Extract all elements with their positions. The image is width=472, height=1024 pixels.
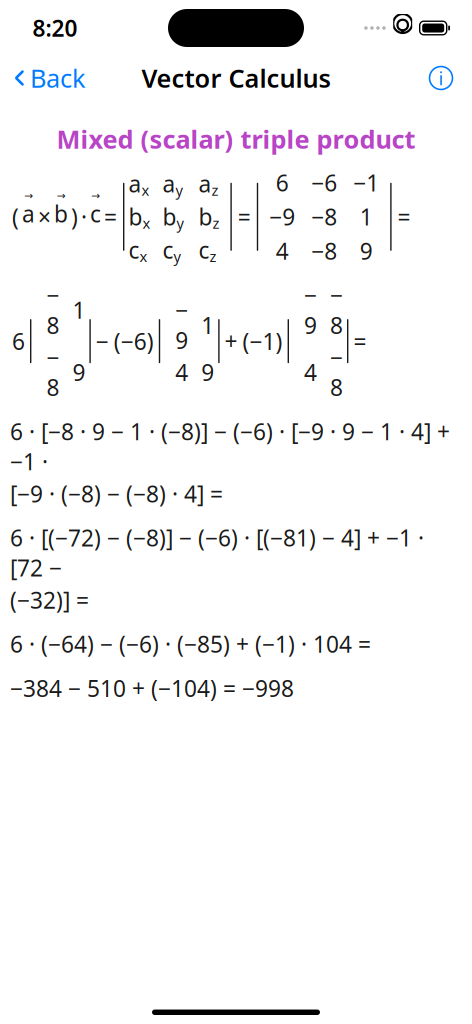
staticText: = xyxy=(398,202,411,232)
staticText: a xyxy=(128,169,141,199)
staticText: −8 xyxy=(330,280,343,340)
staticText: x xyxy=(141,180,149,200)
staticText: z xyxy=(212,213,219,233)
staticText: Vector Calculus xyxy=(141,61,330,95)
staticText: 6 · [−8 · 9 − 1 · (−8)] − (−6) · [−9 · 9… xyxy=(10,416,450,477)
staticText: i xyxy=(438,66,443,90)
staticText: y xyxy=(173,246,180,266)
staticText: 4 xyxy=(304,357,317,387)
staticText: 1 xyxy=(72,295,85,325)
staticText: + xyxy=(225,326,238,356)
staticText: −8 xyxy=(311,236,337,266)
staticText: 9 xyxy=(360,236,373,266)
staticText: 1 xyxy=(201,310,214,340)
button[interactable]: Info xyxy=(428,59,472,97)
staticText: 9 xyxy=(72,357,85,387)
staticText: = xyxy=(104,202,117,232)
staticText: Back xyxy=(30,61,86,95)
staticText: 8:20 xyxy=(32,13,77,43)
staticText: Mixed (scalar) triple product xyxy=(56,122,415,156)
staticText: b xyxy=(128,202,142,232)
staticText: −9 xyxy=(269,202,295,232)
staticText: −8 xyxy=(46,342,59,402)
staticText: (−1) xyxy=(243,326,283,356)
staticText: c xyxy=(162,235,173,265)
staticText: = xyxy=(353,326,366,356)
staticText: x xyxy=(139,246,147,266)
staticText: a xyxy=(22,199,35,229)
staticText: −9 xyxy=(304,280,317,340)
staticText: −6 xyxy=(311,168,337,198)
staticText: 6 · [(−72) − (−8)] − (−6) · [(−81) − 4] … xyxy=(10,523,424,583)
staticText: 4 xyxy=(276,236,289,266)
staticText: z xyxy=(209,246,216,266)
staticText: a xyxy=(162,169,175,199)
staticText: z xyxy=(211,180,218,200)
staticText: x xyxy=(142,213,150,233)
staticText: y xyxy=(175,180,182,200)
staticText: → xyxy=(56,190,65,202)
staticText: → xyxy=(91,190,100,202)
staticText: −384 − 510 + (−104) = −998 xyxy=(10,673,294,703)
staticText: −8 xyxy=(46,280,59,340)
staticText: c xyxy=(90,199,101,229)
staticText: −9 xyxy=(175,295,188,355)
button[interactable]: Back xyxy=(0,55,86,101)
staticText: 6 xyxy=(12,326,25,356)
staticText: [−9 · (−8) − (−8) · 4] = xyxy=(10,479,223,509)
staticText: b xyxy=(54,199,68,229)
staticText: 9 xyxy=(201,357,214,387)
staticText: = xyxy=(238,202,251,232)
staticText: 6 · (−64) − (−6) · (−85) + (−1) · 104 = xyxy=(10,629,371,659)
staticText: b xyxy=(162,202,176,232)
staticText: − xyxy=(96,326,109,356)
staticText: (−32)] = xyxy=(10,585,89,615)
staticText: −8 xyxy=(330,342,343,402)
staticText: (−6) xyxy=(114,326,154,356)
staticText: 6 xyxy=(276,168,289,198)
staticText: ( xyxy=(12,202,19,232)
staticText: −8 xyxy=(311,202,337,232)
staticText: ) xyxy=(71,202,78,232)
staticText: c xyxy=(198,235,209,265)
staticText: · xyxy=(81,202,87,232)
staticText: b xyxy=(198,202,212,232)
staticText: → xyxy=(24,190,33,202)
staticText: c xyxy=(128,235,139,265)
staticText: 4 xyxy=(175,357,188,387)
staticText: y xyxy=(176,213,183,233)
staticText: 1 xyxy=(360,202,373,232)
staticText: a xyxy=(198,169,211,199)
staticText: −1 xyxy=(353,168,379,198)
staticText: × xyxy=(38,202,51,232)
